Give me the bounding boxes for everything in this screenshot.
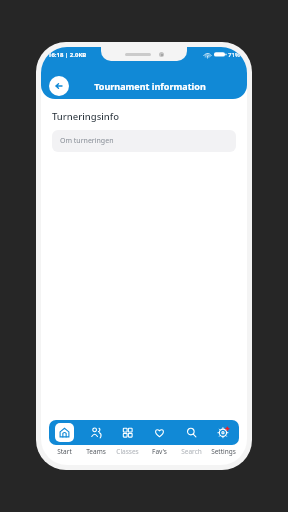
staticText: Search (181, 447, 202, 456)
staticText: Settings (211, 447, 236, 456)
staticText: Tournament information (94, 80, 206, 92)
staticText: Classes (116, 447, 139, 456)
staticText: Om turneringen (60, 136, 114, 146)
staticText: Teams (86, 447, 106, 456)
button[interactable]: Om turneringen (52, 130, 236, 152)
staticText: Fav's (152, 447, 167, 456)
button[interactable]: Search (175, 420, 207, 445)
staticText: 71% (228, 51, 240, 59)
button[interactable]: Back (49, 76, 69, 96)
button[interactable]: Fav's (143, 420, 175, 445)
staticText: Turneringsinfo (52, 110, 120, 123)
button[interactable]: Settings (207, 420, 239, 445)
button[interactable]: Classes (111, 420, 143, 445)
staticText: 16:18 | 2.0KB (48, 51, 87, 59)
button[interactable]: Start (49, 420, 80, 445)
staticText: Start (57, 447, 72, 456)
button[interactable]: Teams (80, 420, 111, 445)
